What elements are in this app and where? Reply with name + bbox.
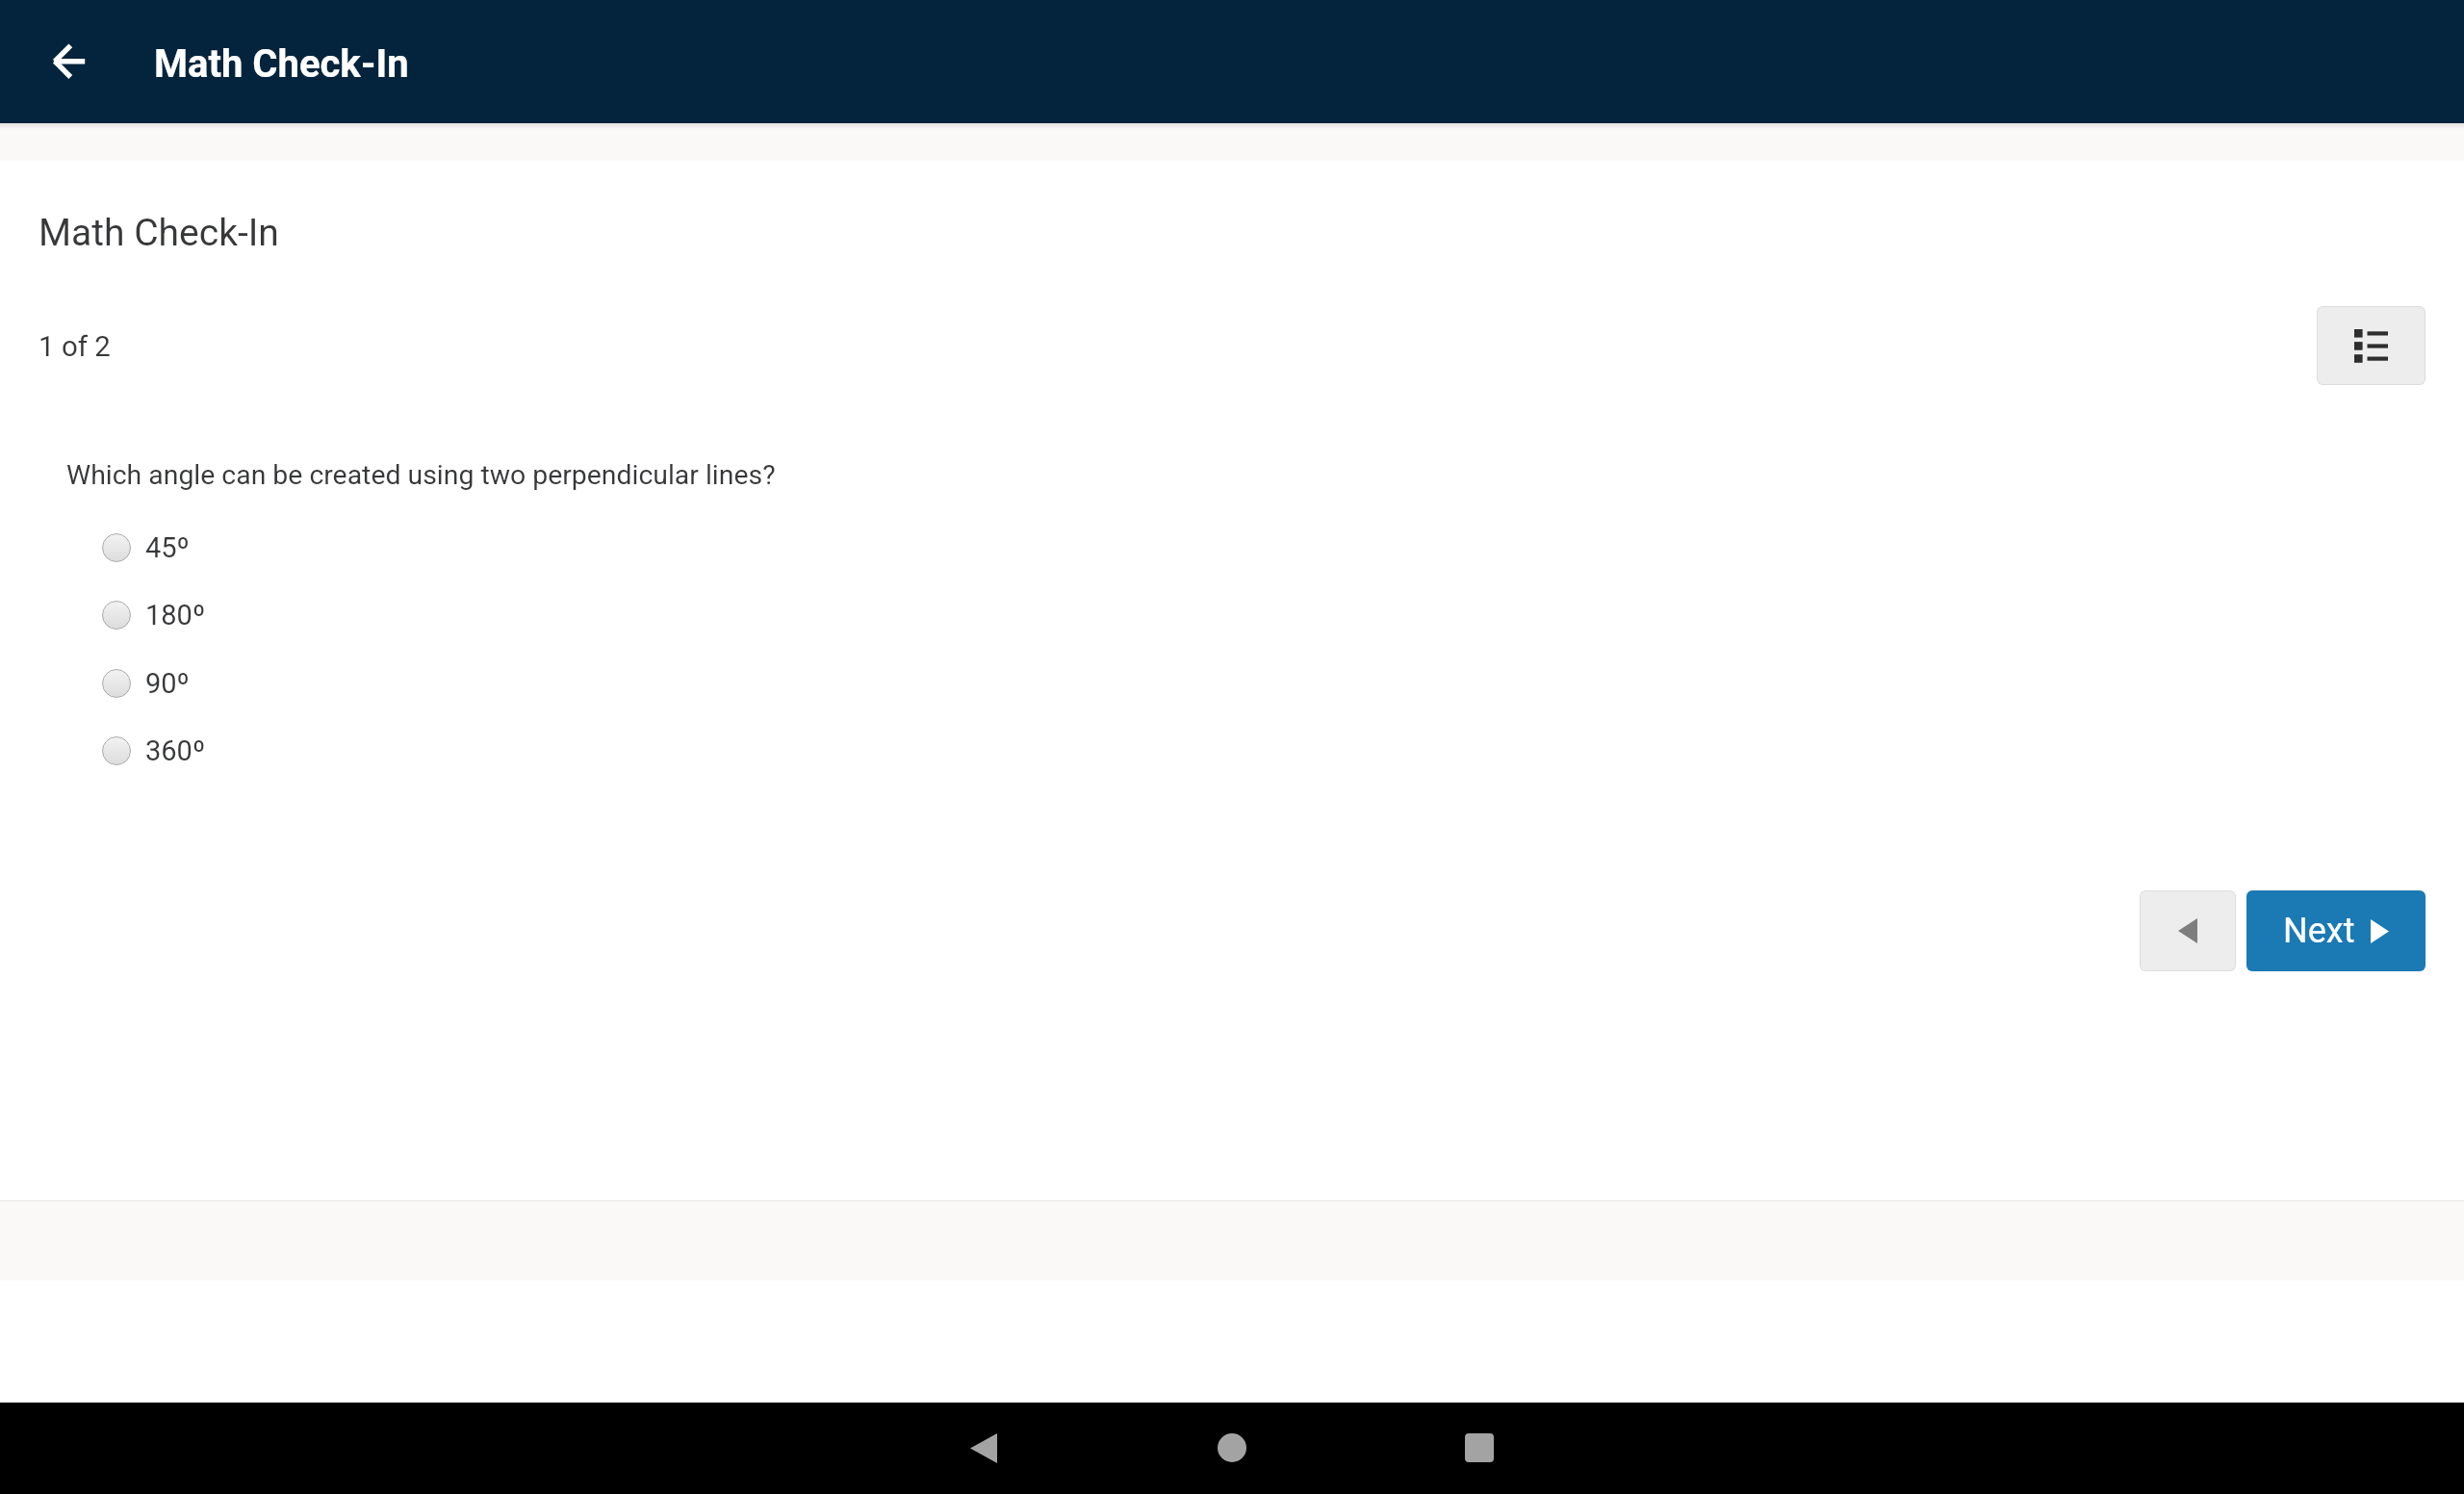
staticText: 180º — [145, 599, 206, 631]
staticText: 45º — [145, 531, 190, 564]
staticText: Math Check-In — [38, 211, 279, 255]
button[interactable]: Back — [38, 31, 100, 92]
staticText: 90º — [145, 667, 190, 700]
button[interactable]: 180º — [58, 581, 147, 649]
button[interactable]: Next — [2246, 890, 2425, 971]
button[interactable]: Previous question — [2140, 890, 2236, 971]
staticText: Next — [2283, 911, 2355, 951]
button[interactable]: Recents — [1441, 1409, 1518, 1486]
button[interactable]: Home — [1193, 1409, 1270, 1486]
staticText: Math Check-In — [154, 41, 409, 87]
button[interactable]: 45º — [58, 514, 131, 581]
button[interactable]: 90º — [58, 650, 131, 717]
button[interactable]: Back — [945, 1409, 1022, 1486]
button[interactable]: 360º — [58, 717, 147, 785]
button[interactable]: Question list — [2317, 306, 2425, 385]
staticText: 360º — [145, 734, 206, 767]
staticText: Which angle can be created using two per… — [66, 459, 776, 491]
staticText: 1 of 2 — [38, 330, 111, 364]
